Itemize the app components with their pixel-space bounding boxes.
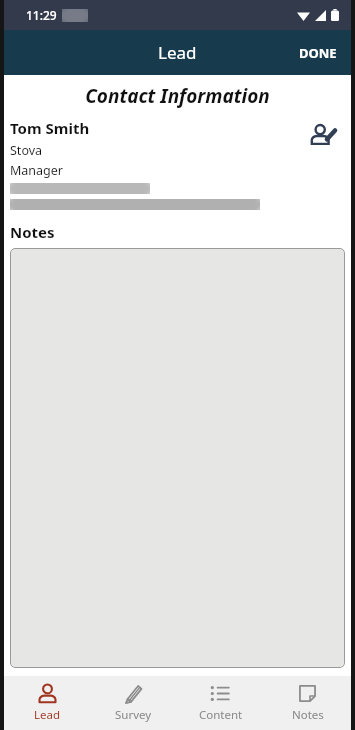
staticText: Notes — [10, 222, 55, 242]
button[interactable]: Edit contact — [305, 118, 341, 154]
staticText: Tom Smith — [10, 118, 90, 138]
staticText: Survey — [115, 707, 152, 723]
staticText: Lead — [34, 707, 61, 723]
staticText: Manager — [10, 162, 63, 179]
button[interactable]: DONE — [285, 34, 351, 72]
staticText: Lead — [158, 41, 197, 64]
staticText: DONE — [299, 44, 337, 62]
staticText: Notes — [292, 707, 324, 723]
button[interactable] — [10, 248, 345, 668]
button[interactable]: Content — [177, 676, 264, 730]
button[interactable]: Survey — [90, 676, 177, 730]
staticText: 11:29 — [26, 7, 57, 23]
button[interactable]: Lead — [4, 676, 90, 730]
staticText: Stova — [10, 142, 43, 159]
staticText: Content — [199, 707, 243, 723]
staticText: Contact Information — [4, 83, 351, 109]
button[interactable]: Notes — [264, 676, 351, 730]
